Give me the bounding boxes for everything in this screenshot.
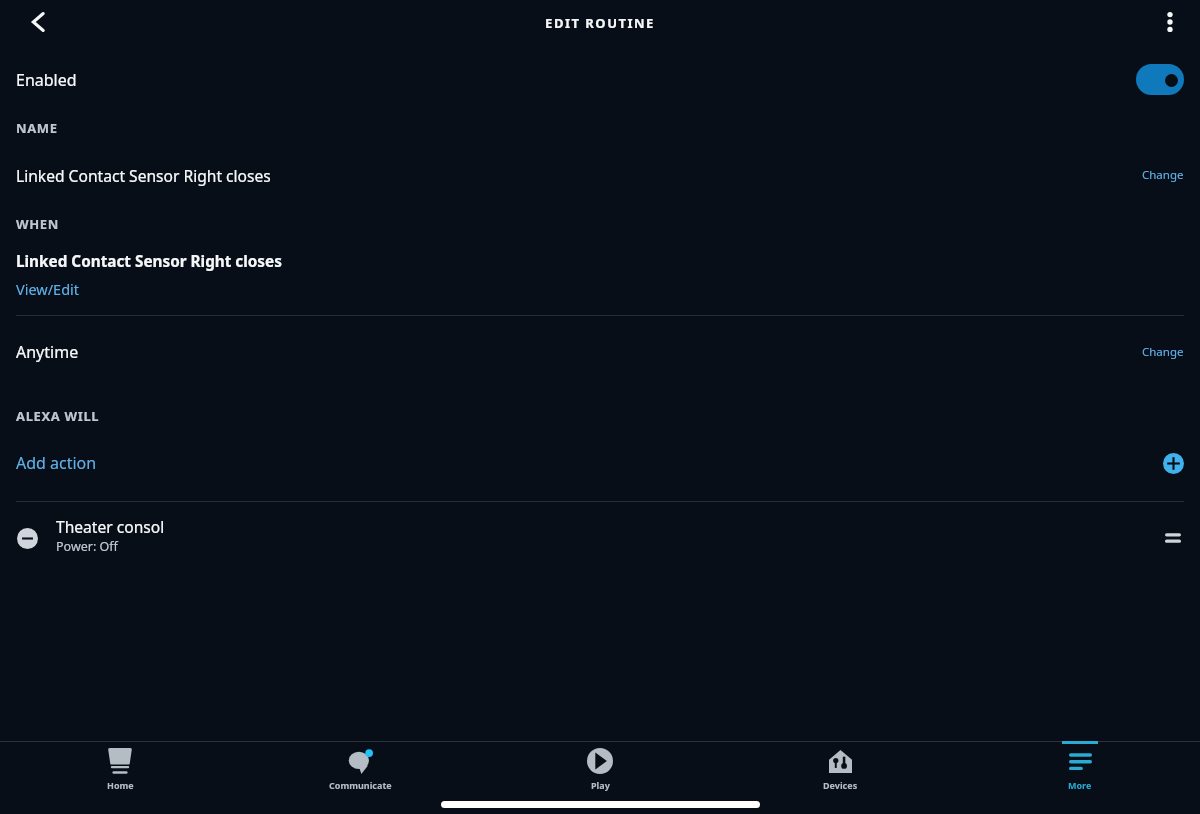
button[interactable]: Linked Contact Sensor Right closes <box>0 251 1200 306</box>
staticText: Linked Contact Sensor Right closes <box>16 251 282 272</box>
staticText: Anytime <box>16 341 79 363</box>
staticText: View/Edit <box>16 279 80 299</box>
button[interactable]: Remove action <box>17 528 38 549</box>
staticText: EDIT ROUTINE <box>0 14 1200 32</box>
staticText: Home <box>107 779 134 791</box>
button[interactable]: More options <box>1150 2 1190 42</box>
button[interactable]: Play <box>480 742 720 794</box>
button[interactable]: Home <box>0 742 240 794</box>
button[interactable]: Devices <box>720 742 960 794</box>
button[interactable]: Change <box>1142 344 1184 360</box>
button[interactable]: Enabled <box>0 56 1200 103</box>
button[interactable]: Add action <box>16 452 97 474</box>
button[interactable]: Back <box>18 2 58 42</box>
staticText: Linked Contact Sensor Right closes <box>16 165 271 186</box>
staticText: WHEN <box>16 215 59 233</box>
staticText: Change <box>1142 344 1184 360</box>
staticText: NAME <box>16 119 58 137</box>
staticText: Power: Off <box>56 538 118 555</box>
staticText: Add action <box>16 452 97 474</box>
button[interactable]: Communicate <box>240 742 480 794</box>
staticText: More <box>1068 779 1092 791</box>
button[interactable]: Reorder <box>1165 530 1181 546</box>
button[interactable]: Enabled toggle <box>1136 64 1184 95</box>
button[interactable]: More <box>960 742 1200 794</box>
staticText: ALEXA WILL <box>16 407 100 425</box>
button[interactable]: Add action <box>1163 453 1184 474</box>
button[interactable]: Remove action <box>0 511 1200 567</box>
staticText: Play <box>591 779 610 791</box>
staticText: Theater consol <box>56 516 165 537</box>
button[interactable]: Change <box>1142 167 1184 183</box>
staticText: Change <box>1142 167 1184 183</box>
staticText: Enabled <box>16 69 77 91</box>
staticText: Devices <box>823 779 858 791</box>
staticText: Communicate <box>329 779 392 791</box>
